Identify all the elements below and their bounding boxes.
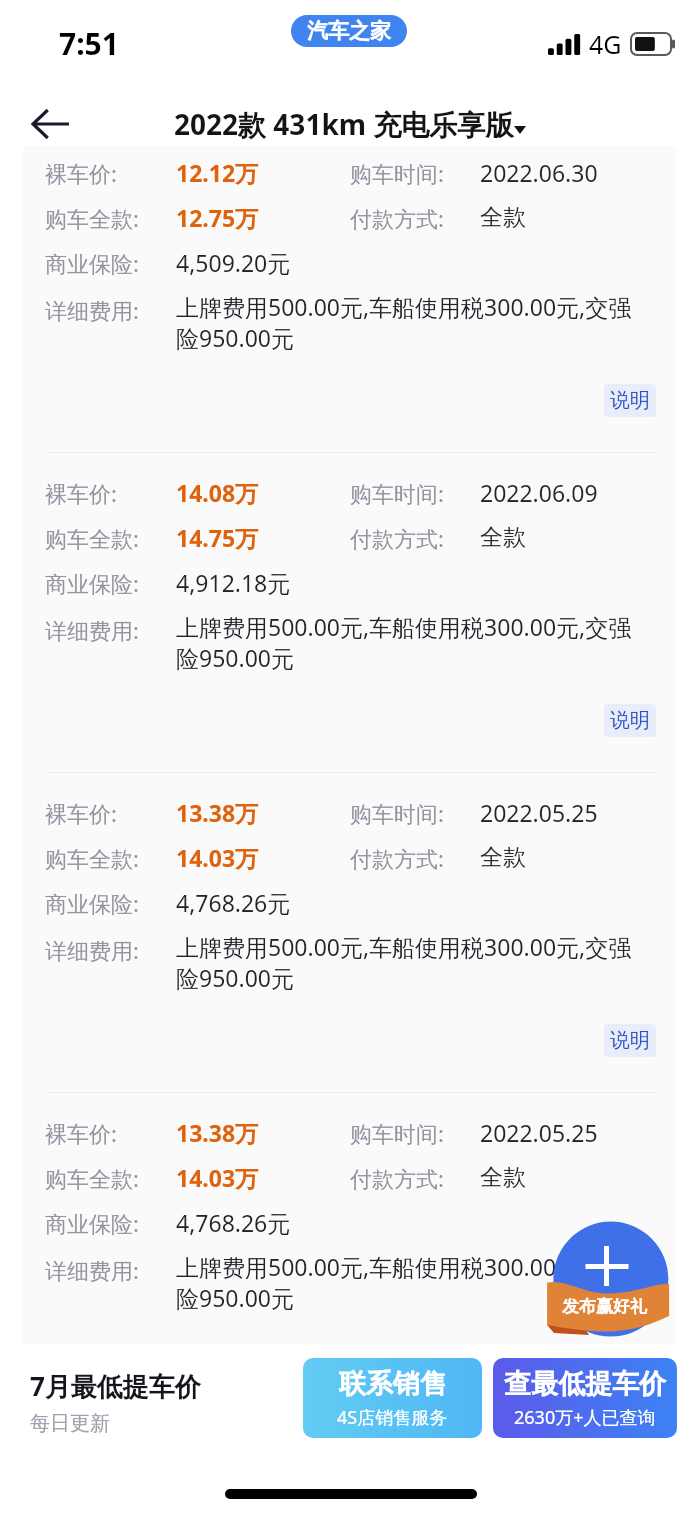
staticText: 2022款 431km 充电乐享版: [174, 105, 514, 143]
staticText: 购车全款:: [45, 203, 139, 233]
staticText: 商业保险:: [45, 248, 139, 278]
staticText: 购车时间:: [350, 478, 444, 508]
staticText: 付款方式:: [350, 843, 444, 873]
staticText: 购车全款:: [45, 523, 139, 553]
staticText: 说明: [610, 388, 650, 413]
staticText: 购车全款:: [45, 843, 139, 873]
staticText: 详细费用:: [45, 295, 139, 325]
button[interactable]: 裸车价:: [23, 146, 676, 452]
staticText: 付款方式:: [350, 203, 444, 233]
button[interactable]: 裸车价:: [23, 453, 676, 772]
staticText: 详细费用:: [45, 935, 139, 965]
staticText: 2022.06.30: [480, 157, 598, 188]
button[interactable]: 联系销售: [303, 1358, 482, 1438]
staticText: 7:51: [59, 23, 119, 64]
staticText: 每日更新: [30, 1411, 110, 1436]
button[interactable]: 裸车价:: [23, 1093, 676, 1346]
staticText: 付款方式:: [350, 1163, 444, 1193]
staticText: 购车全款:: [45, 1163, 139, 1193]
staticText: 详细费用:: [45, 1255, 139, 1285]
staticText: 付款方式:: [350, 523, 444, 553]
staticText: 4,768.26元: [176, 1207, 291, 1238]
staticText: 全款: [480, 203, 526, 232]
button[interactable]: 说明: [604, 704, 656, 737]
staticText: 商业保险:: [45, 888, 139, 918]
staticText: 2022.05.25: [480, 1117, 598, 1148]
staticText: 说明: [610, 708, 650, 733]
staticText: 上牌费用500.00元,车船使用税300.00元,交强 险950.00元: [176, 1251, 632, 1313]
staticText: 2022.05.25: [480, 797, 598, 828]
staticText: 全款: [480, 843, 526, 872]
staticText: 说明: [610, 1028, 650, 1053]
staticText: 联系销售: [339, 1367, 447, 1401]
staticText: 全款: [480, 1163, 526, 1192]
staticText: 裸车价:: [45, 1118, 117, 1148]
staticText: 上牌费用500.00元,车船使用税300.00元,交强 险950.00元: [176, 931, 632, 993]
button[interactable]: 发布赢好礼: [545, 1215, 677, 1345]
staticText: 裸车价:: [45, 478, 117, 508]
button[interactable]: 裸车价:: [23, 773, 676, 1092]
button[interactable]: 2022款 431km 充电乐享版: [174, 105, 526, 143]
staticText: 全款: [480, 523, 526, 552]
staticText: 12.75万: [176, 202, 259, 233]
staticText: 14.75万: [176, 522, 259, 553]
staticText: 13.38万: [176, 797, 259, 828]
staticText: 14.03万: [176, 1162, 259, 1193]
staticText: 查最低提车价: [504, 1367, 666, 1401]
staticText: 上牌费用500.00元,车船使用税300.00元,交强 险950.00元: [176, 611, 632, 673]
button[interactable]: 汽车之家: [291, 15, 407, 47]
staticText: 4G: [589, 27, 622, 61]
staticText: 4S店销售服务: [337, 1405, 448, 1430]
staticText: 12.12万: [176, 157, 259, 188]
staticText: 发布赢好礼: [562, 1296, 647, 1317]
staticText: 裸车价:: [45, 798, 117, 828]
staticText: 购车时间:: [350, 798, 444, 828]
staticText: 上牌费用500.00元,车船使用税300.00元,交强 险950.00元: [176, 291, 632, 353]
staticText: 2630万+人已查询: [514, 1405, 656, 1430]
button[interactable]: 说明: [604, 384, 656, 417]
staticText: 详细费用:: [45, 615, 139, 645]
staticText: 14.03万: [176, 842, 259, 873]
staticText: 4,509.20元: [176, 247, 291, 278]
staticText: 7月最低提车价: [30, 1368, 201, 1404]
staticText: 裸车价:: [45, 158, 117, 188]
staticText: 商业保险:: [45, 1208, 139, 1238]
staticText: 汽车之家: [307, 18, 391, 44]
button[interactable]: Back: [20, 94, 80, 154]
staticText: 商业保险:: [45, 568, 139, 598]
staticText: 4,768.26元: [176, 887, 291, 918]
staticText: 2022.06.09: [480, 477, 598, 508]
staticText: 购车时间:: [350, 158, 444, 188]
button[interactable]: 说明: [604, 1024, 656, 1057]
staticText: 13.38万: [176, 1117, 259, 1148]
staticText: 4,912.18元: [176, 567, 291, 598]
button[interactable]: 查最低提车价: [493, 1358, 677, 1438]
staticText: 购车时间:: [350, 1118, 444, 1148]
staticText: 14.08万: [176, 477, 259, 508]
